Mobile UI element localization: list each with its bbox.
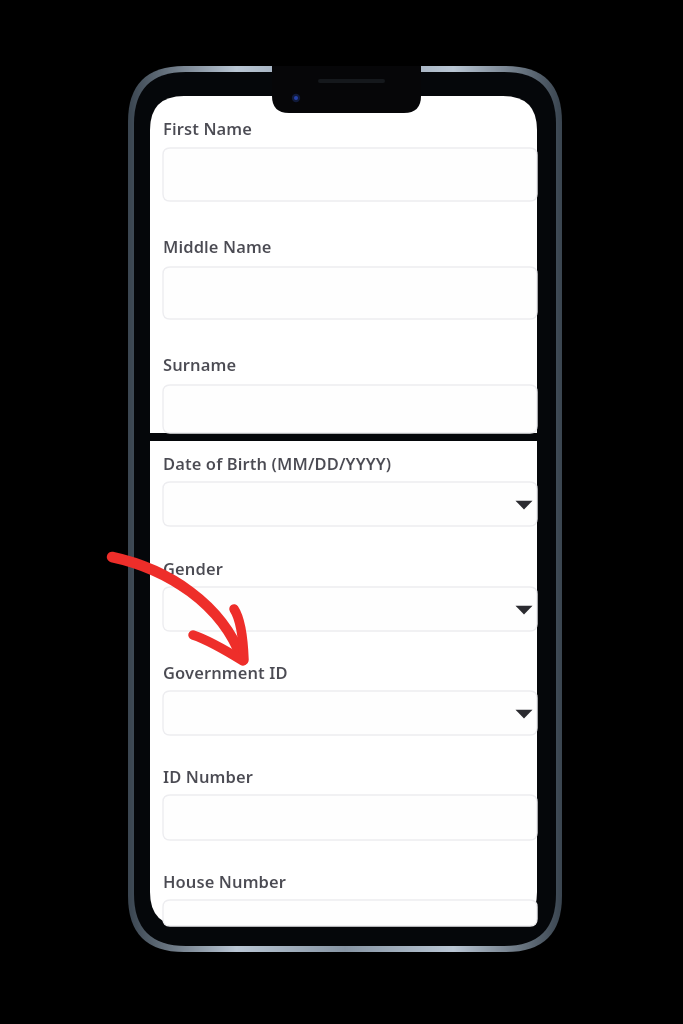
button[interactable]: First Name [163,111,537,201]
button[interactable]: House Number [163,864,537,926]
button[interactable]: Date of Birth (MM/DD/YYYY) [163,446,537,526]
button[interactable]: ID Number [163,759,537,840]
button[interactable]: Surname [163,347,537,433]
button[interactable]: Government ID [163,655,537,735]
button[interactable]: Middle Name [163,229,537,319]
button[interactable]: Gender [163,551,537,631]
